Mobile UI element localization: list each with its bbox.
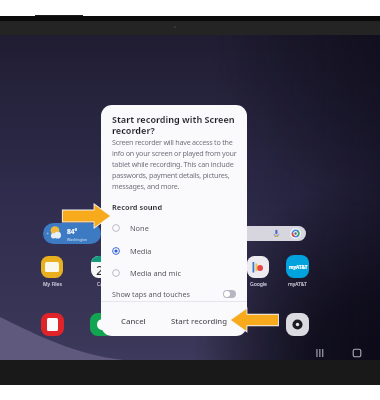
staticText: Cancel — [121, 316, 146, 327]
staticText: Start recording — [171, 316, 228, 327]
button[interactable]: Phone — [90, 313, 113, 336]
staticText: Google — [250, 281, 267, 288]
staticText: 84° — [67, 227, 78, 236]
staticText: 2 — [96, 261, 104, 278]
button[interactable]: Home — [347, 343, 367, 363]
button[interactable]: None — [101, 217, 247, 239]
button[interactable]: Google — [238, 256, 278, 288]
button[interactable]: My Files — [32, 256, 72, 288]
staticText: My Files — [43, 281, 62, 288]
staticText: myAT&T — [289, 264, 308, 270]
button[interactable]: Show taps and touches — [101, 283, 247, 304]
staticText: myAT&T — [288, 281, 307, 288]
staticText: Show taps and touches — [112, 289, 191, 299]
button[interactable]: Search — [228, 226, 306, 241]
button[interactable]: Notes — [41, 313, 64, 336]
staticText: Screen recorder will have access to the … — [112, 137, 240, 191]
button[interactable]: Cancel — [114, 312, 152, 330]
button[interactable]: Camera — [286, 313, 309, 336]
staticText: Media and mic — [130, 268, 181, 278]
staticText: None — [130, 223, 149, 233]
button[interactable]: Media — [101, 240, 247, 262]
button[interactable]: myAT&T — [277, 255, 318, 288]
button[interactable]: Start recording — [165, 312, 233, 330]
button[interactable]: Recents — [311, 343, 331, 363]
button[interactable]: 2 — [82, 256, 122, 288]
button[interactable]: Weather — [43, 223, 101, 244]
staticText: Start recording with Screen recorder? — [112, 113, 236, 137]
staticText: Record sound — [112, 202, 163, 212]
staticText: Media — [130, 246, 152, 256]
staticText: Washington — [67, 237, 88, 242]
staticText: Cale — [97, 281, 108, 288]
button[interactable]: Media and mic — [101, 262, 247, 284]
